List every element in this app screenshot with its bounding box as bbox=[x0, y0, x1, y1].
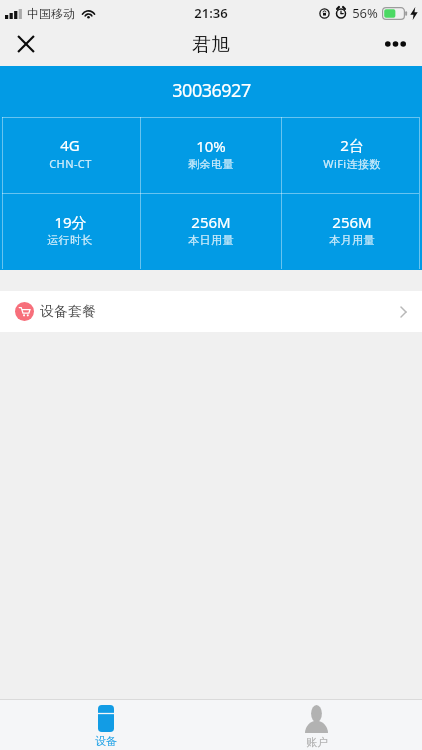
staticText: 10% bbox=[196, 136, 226, 156]
button[interactable]: 256M bbox=[140, 193, 281, 270]
staticText: 30036927 bbox=[172, 78, 251, 103]
staticText: 本日用量 bbox=[188, 233, 234, 247]
button[interactable]: 256M bbox=[281, 193, 422, 270]
staticText: 19分 bbox=[54, 212, 87, 232]
staticText: WiFi连接数 bbox=[323, 156, 381, 171]
button[interactable]: 设备 bbox=[0, 700, 211, 750]
staticText: 君旭 bbox=[192, 33, 230, 57]
staticText: 本月用量 bbox=[329, 233, 375, 247]
button[interactable]: 2台 bbox=[281, 117, 422, 193]
staticText: CHN-CT bbox=[49, 156, 92, 171]
staticText: 256M bbox=[191, 212, 231, 232]
button[interactable]: 10% bbox=[140, 117, 281, 193]
staticText: 设备套餐 bbox=[40, 303, 96, 321]
staticText: 2台 bbox=[340, 135, 364, 155]
staticText: 256M bbox=[332, 212, 372, 232]
button[interactable]: 账户 bbox=[211, 700, 422, 750]
button[interactable]: 设备套餐 bbox=[0, 291, 422, 332]
button[interactable]: More options bbox=[376, 24, 415, 63]
staticText: 56% bbox=[352, 4, 378, 22]
staticText: 21:36 bbox=[194, 4, 228, 22]
button[interactable]: Close bbox=[6, 24, 45, 63]
button[interactable]: 19分 bbox=[0, 193, 140, 270]
staticText: 剩余电量 bbox=[188, 157, 234, 171]
staticText: 中国移动 bbox=[27, 6, 75, 21]
staticText: 设备 bbox=[95, 734, 117, 748]
staticText: 4G bbox=[60, 135, 80, 155]
button[interactable]: 4G bbox=[0, 117, 140, 193]
staticText: 运行时长 bbox=[47, 233, 93, 247]
staticText: 账户 bbox=[306, 735, 328, 749]
